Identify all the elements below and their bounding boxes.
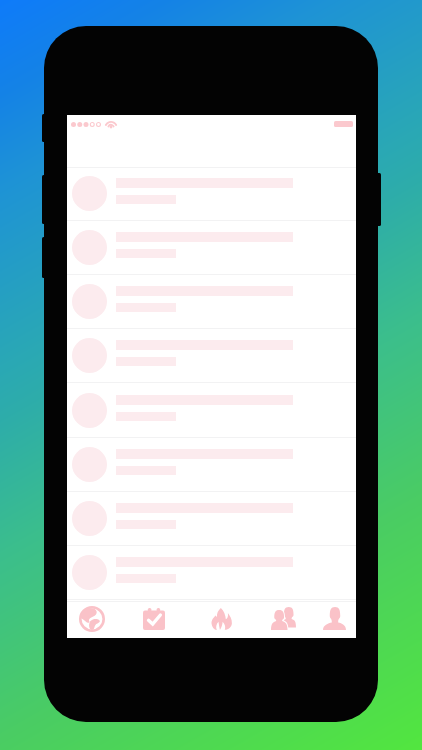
button[interactable] <box>67 275 356 329</box>
button[interactable] <box>67 492 356 546</box>
button[interactable]: Friends <box>252 601 314 636</box>
button[interactable] <box>67 384 356 438</box>
button[interactable] <box>67 221 356 275</box>
button[interactable] <box>67 167 356 221</box>
button[interactable]: Profile <box>308 601 360 636</box>
button[interactable]: Events <box>122 601 186 636</box>
button[interactable]: Trending <box>188 601 254 636</box>
button[interactable] <box>67 329 356 383</box>
button[interactable] <box>67 546 356 600</box>
button[interactable] <box>67 438 356 492</box>
button[interactable]: Discover <box>61 601 123 636</box>
